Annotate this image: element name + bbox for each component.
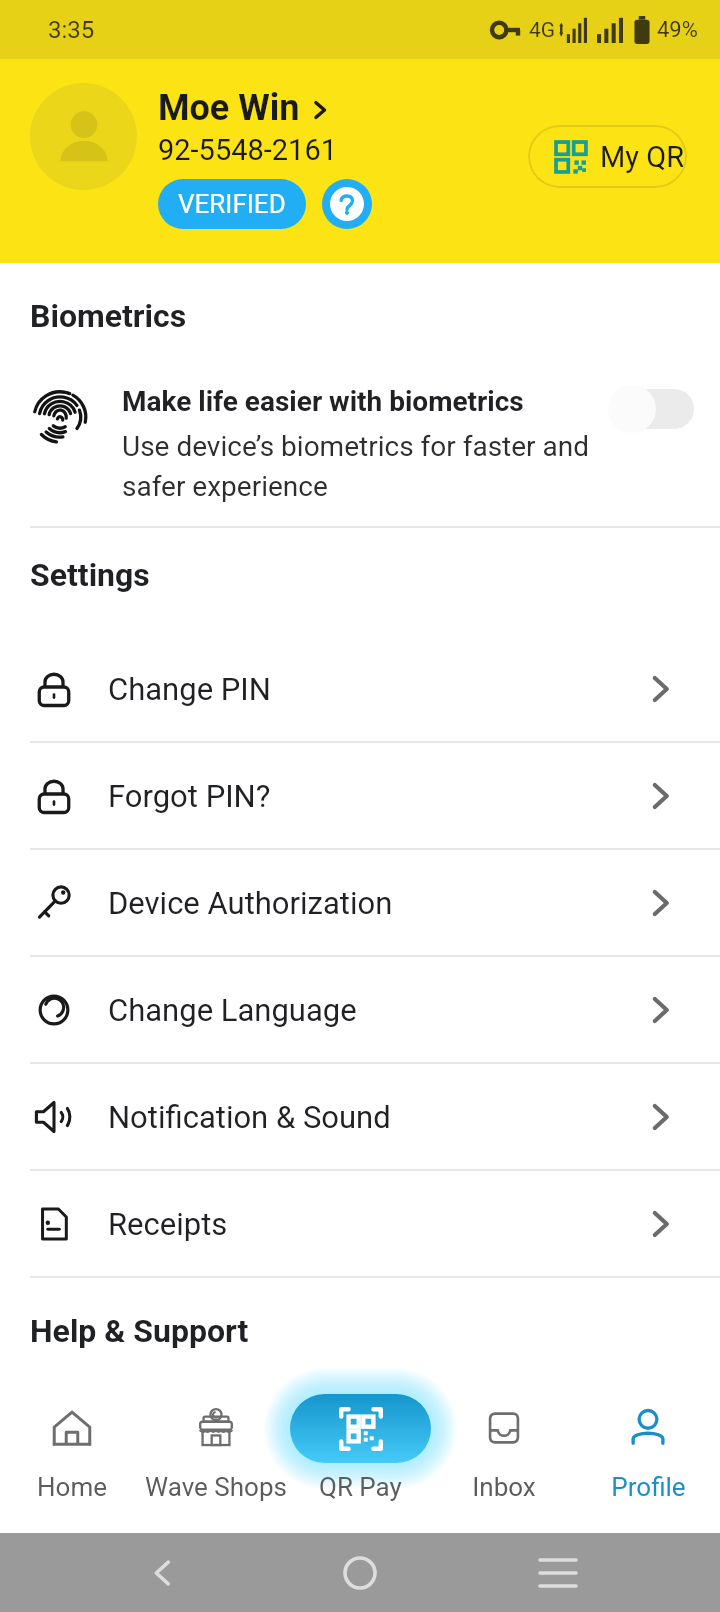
button[interactable]: VERIFIED: [158, 179, 306, 229]
staticText: 49%: [657, 17, 698, 43]
staticText: Wave Shops: [145, 1472, 287, 1502]
button[interactable]: My QR: [528, 125, 687, 188]
staticText: Change Language: [108, 992, 357, 1028]
staticText: Notification & Sound: [108, 1099, 391, 1135]
button[interactable]: Profile picture: [30, 83, 137, 190]
staticText: Settings: [30, 556, 150, 594]
staticText: QR Pay: [319, 1472, 402, 1502]
button[interactable]: Change Language: [0, 957, 720, 1062]
staticText: Make life easier with biometrics: [122, 385, 524, 418]
staticText: Forgot PIN?: [108, 778, 271, 814]
staticText: My QR: [600, 140, 685, 174]
button[interactable]: QR Pay: [288, 1381, 432, 1533]
staticText: 92-5548-2161: [158, 133, 338, 167]
button[interactable]: Moe Win: [158, 87, 328, 129]
button[interactable]: Help: [322, 179, 372, 229]
button[interactable]: Receipts: [0, 1171, 720, 1276]
button[interactable]: [608, 385, 694, 433]
button[interactable]: Device Authorization: [0, 850, 720, 955]
button[interactable]: Make life easier with biometrics: [0, 385, 720, 503]
button[interactable]: Recent apps: [523, 1538, 593, 1608]
staticText: Change PIN: [108, 671, 271, 707]
button[interactable]: Change PIN: [0, 636, 720, 741]
staticText: 3:35: [48, 16, 95, 44]
staticText: Home: [37, 1472, 107, 1502]
staticText: Device Authorization: [108, 885, 393, 921]
button[interactable]: Notification & Sound: [0, 1064, 720, 1169]
button[interactable]: Home: [325, 1538, 395, 1608]
staticText: Moe Win: [158, 87, 300, 129]
button[interactable]: Home: [0, 1381, 144, 1533]
staticText: Inbox: [472, 1472, 536, 1502]
button[interactable]: Forgot PIN?: [0, 743, 720, 848]
button[interactable]: Inbox: [432, 1381, 576, 1533]
staticText: VERIFIED: [178, 189, 286, 219]
button[interactable]: Wave Shops: [144, 1381, 288, 1533]
staticText: 4G: [529, 18, 556, 43]
button[interactable]: Back: [128, 1538, 198, 1608]
staticText: Profile: [611, 1472, 686, 1502]
button[interactable]: Profile: [576, 1381, 720, 1533]
staticText: Receipts: [108, 1206, 228, 1242]
staticText: Help & Support: [30, 1312, 249, 1350]
staticText: Biometrics: [30, 297, 187, 335]
staticText: Use device’s biometrics for faster and s…: [122, 430, 602, 503]
